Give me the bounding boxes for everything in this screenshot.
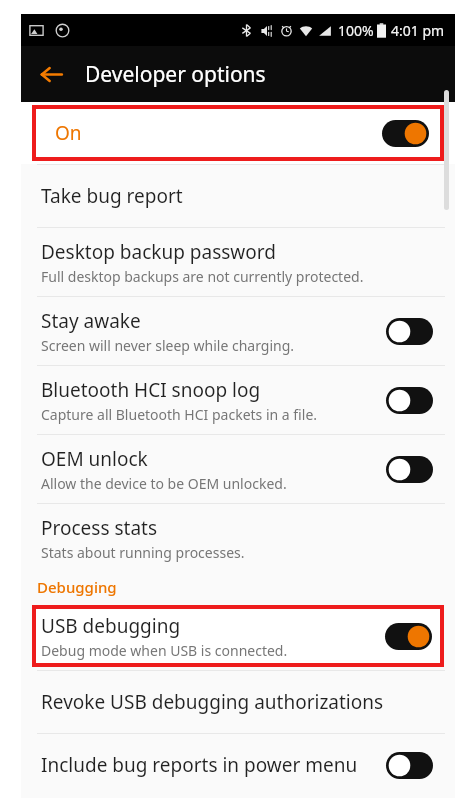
staticText: Debug mode when USB is connected.: [41, 641, 288, 660]
button[interactable]: Revoke USB debugging authorizations: [21, 671, 455, 733]
staticText: USB debugging: [41, 613, 181, 639]
staticText: Capture all Bluetooth HCI packets in a f…: [41, 405, 318, 424]
button[interactable]: Toggle off: [386, 456, 433, 483]
button[interactable]: OEM unlock: [21, 435, 455, 503]
button[interactable]: On: [32, 105, 444, 161]
button[interactable]: Take bug report: [21, 165, 455, 227]
button[interactable]: Toggle on: [385, 623, 432, 650]
staticText: Debugging: [37, 577, 117, 597]
button[interactable]: Include bug reports in power menu: [21, 734, 455, 796]
staticText: Screen will never sleep while charging.: [41, 336, 295, 355]
button[interactable]: Stay awake: [21, 297, 455, 365]
button[interactable]: Back: [29, 52, 73, 96]
button[interactable]: Toggle off: [386, 752, 433, 779]
staticText: Desktop backup password: [41, 239, 276, 265]
staticText: Stay awake: [41, 308, 141, 334]
staticText: 100%: [338, 21, 374, 40]
button[interactable]: Toggle on: [382, 120, 429, 147]
staticText: OEM unlock: [41, 446, 148, 472]
button[interactable]: Desktop backup password: [21, 228, 455, 296]
staticText: Full desktop backups are not currently p…: [41, 267, 364, 286]
staticText: Process stats: [41, 515, 158, 541]
staticText: On: [55, 120, 82, 146]
button[interactable]: Bluetooth HCI snoop log: [21, 366, 455, 434]
staticText: Allow the device to be OEM unlocked.: [41, 474, 287, 493]
staticText: 4:01 pm: [391, 21, 445, 40]
button[interactable]: USB debugging: [32, 605, 444, 667]
staticText: Take bug report: [41, 183, 183, 209]
button[interactable]: Toggle off: [386, 387, 433, 414]
button[interactable]: Toggle off: [386, 318, 433, 345]
staticText: Stats about running processes.: [41, 543, 245, 562]
staticText: Include bug reports in power menu: [41, 752, 358, 778]
staticText: Revoke USB debugging authorizations: [41, 689, 384, 715]
staticText: Developer options: [85, 60, 266, 89]
button[interactable]: Process stats: [21, 504, 455, 572]
staticText: Bluetooth HCI snoop log: [41, 377, 261, 403]
